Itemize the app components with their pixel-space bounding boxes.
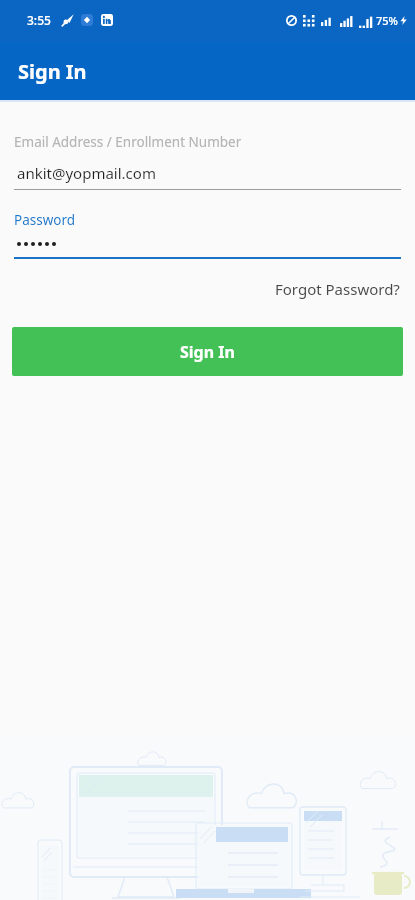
staticText: Forgot Password? xyxy=(275,279,400,299)
staticText: Sign In xyxy=(180,341,235,363)
staticText: Password xyxy=(14,211,76,229)
button[interactable]: Forgot Password? xyxy=(272,276,403,302)
other: Signal 2 xyxy=(359,14,373,28)
other: Mute xyxy=(286,15,297,26)
other: App xyxy=(81,14,93,26)
other: VPN xyxy=(303,15,315,27)
other: Data xyxy=(321,15,332,26)
other: LinkedIn xyxy=(101,14,113,26)
other: Charging xyxy=(399,16,408,25)
other: Signal xyxy=(340,14,353,27)
staticText: Email Address / Enrollment Number xyxy=(14,133,242,151)
other: Rocket xyxy=(62,14,74,26)
button[interactable]: Sign In xyxy=(12,327,403,376)
staticText: 75% xyxy=(376,13,398,28)
staticText: Sign In xyxy=(18,58,87,85)
staticText: ankit@yopmail.com xyxy=(17,163,156,183)
staticText: 3:55 xyxy=(27,12,51,28)
